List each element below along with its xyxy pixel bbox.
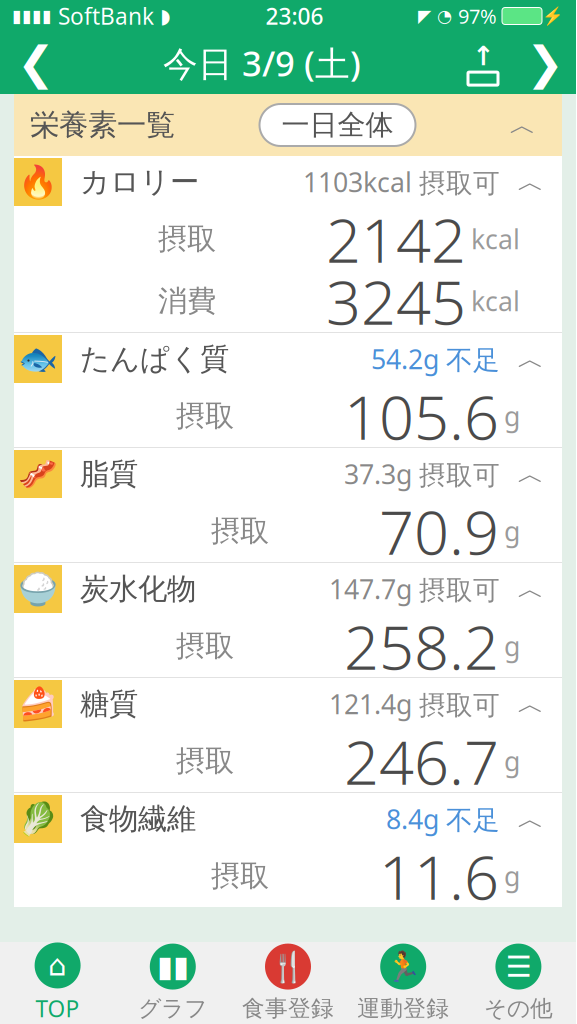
button[interactable]: ☰ [461,944,576,1022]
staticText: ☰ [505,950,531,983]
staticText: 🍴 [269,950,306,983]
staticText: 147.7g 摂取可 [329,571,500,607]
button[interactable]: 🍚 [14,563,562,615]
staticText: ▮▮ [157,950,189,983]
staticText: 摂取 [158,221,216,257]
staticText: 🍚 [18,571,58,607]
staticText: g [504,513,520,549]
staticText: 今日 3/9 (土) [163,40,361,86]
staticText: ︿ [517,688,544,720]
button[interactable]: ⌂ [0,942,115,1023]
staticText: ︿ [517,343,544,375]
staticText: 🏃 [385,950,422,983]
staticText: ▮▮▮▮ [12,6,52,26]
staticText: 37.3g 摂取可 [344,456,500,492]
staticText: 121.4g 摂取可 [329,686,500,722]
staticText: 運動登録 [357,995,449,1022]
button[interactable]: 栄養素一覧 [14,94,562,156]
staticText: 食物繊維 [80,801,196,837]
button[interactable]: ▮▮ [115,944,230,1022]
staticText: 🥓 [18,456,58,492]
staticText: 246.7 [344,720,499,802]
staticText: ◤ [418,6,431,26]
staticText: 23:06 [265,1,323,31]
button[interactable]: 次の日 [514,33,576,93]
staticText: カロリー [80,164,199,200]
staticText: ︿ [517,458,544,490]
staticText: ︿ [517,166,544,198]
staticText: ︿ [509,109,536,141]
staticText: 105.6 [344,375,499,457]
staticText: 摂取 [176,398,234,434]
staticText: 3245 [326,260,466,342]
staticText: 97% [458,3,502,29]
staticText: 8.4g 不足 [386,801,500,837]
staticText: kcal [471,221,520,257]
staticText: 消費 [158,283,216,319]
staticText: 摂取 [211,513,269,549]
button[interactable]: 🔥 [14,156,562,208]
staticText: g [504,743,520,779]
staticText: g [504,628,520,664]
staticText: ◗ [160,5,171,27]
staticText: ︿ [517,803,544,835]
staticText: g [504,398,520,434]
button[interactable]: 🥓 [14,448,562,500]
staticText: 食事登録 [242,995,334,1022]
staticText: ︿ [517,573,544,605]
button[interactable]: 🏃 [346,944,461,1022]
staticText: 54.2g 不足 [371,341,500,377]
button[interactable]: 共有 [452,33,514,93]
staticText: ❮ [17,37,55,89]
staticText: 摂取 [211,858,269,894]
button[interactable]: 前の日 [0,33,72,93]
staticText: 糖質 [80,686,138,722]
staticText: 🔥 [18,164,58,200]
staticText: 一日全体 [281,108,393,142]
staticText: 脂質 [80,456,138,492]
button[interactable]: 🍰 [14,678,562,730]
staticText: 258.2 [344,605,499,687]
staticText: その他 [484,995,553,1022]
staticText: TOP [36,993,80,1023]
staticText: 摂取 [176,743,234,779]
staticText: 摂取 [176,628,234,664]
staticText: 🐟 [18,341,58,377]
staticText: グラフ [138,995,207,1022]
staticText: ⌂ [48,949,67,982]
staticText: ◔ [431,6,458,26]
staticText: 栄養素一覧 [30,107,175,143]
button[interactable]: 🍴 [230,944,346,1022]
staticText: SoftBank [52,1,160,31]
staticText: kcal [471,283,520,319]
staticText: ❯ [526,37,564,89]
staticText: ↑ [472,41,494,71]
staticText: 炭水化物 [80,571,196,607]
staticText: 11.6 [379,835,499,917]
staticText: ⚡ [542,6,564,26]
staticText: 🍰 [18,686,58,722]
button[interactable]: 🐟 [14,333,562,385]
button[interactable]: 🥬 [14,793,562,845]
staticText: 2142 [326,198,466,280]
staticText: 70.9 [379,490,499,572]
staticText: たんぱく質 [80,341,229,377]
staticText: 1103kcal 摂取可 [303,164,500,200]
staticText: g [504,858,520,894]
staticText: 🥬 [18,801,58,837]
